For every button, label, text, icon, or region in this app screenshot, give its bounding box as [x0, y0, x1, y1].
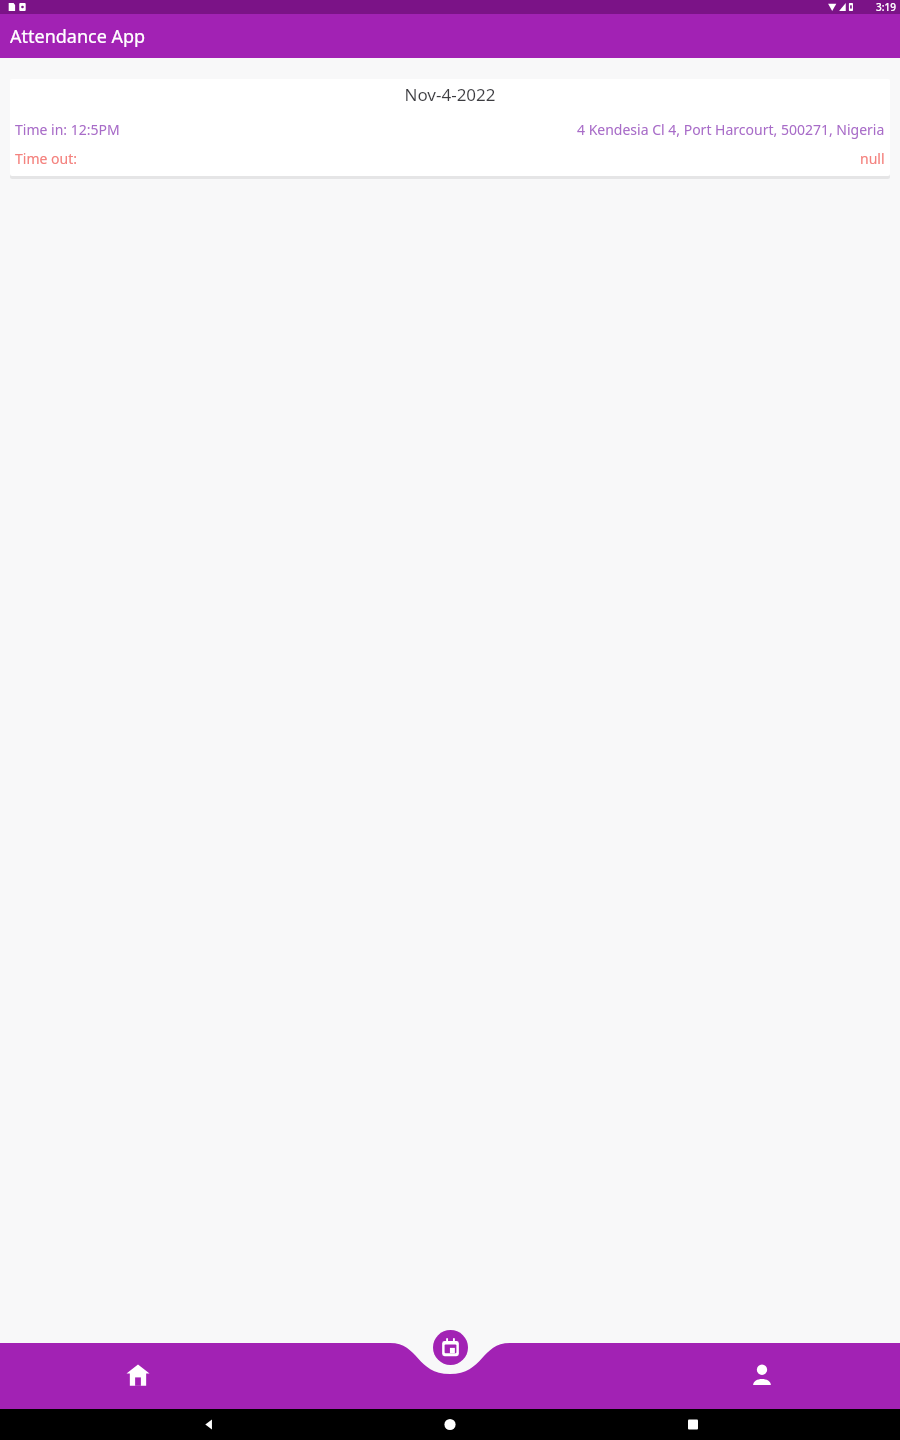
staticText: 4 Kendesia Cl 4, Port Harcourt, 500271, …	[577, 120, 885, 139]
staticText: Nov-4-2022	[15, 83, 885, 106]
staticText: null	[860, 149, 885, 168]
staticText: 3:19	[876, 0, 896, 14]
staticText: Time in: 12:5PM	[15, 120, 120, 139]
staticText: Attendance App	[10, 24, 146, 49]
staticText: Time out:	[15, 149, 77, 168]
button[interactable]: Home	[112, 1349, 164, 1401]
button[interactable]: Calendar	[433, 1330, 468, 1365]
button[interactable]: Nov-4-2022	[10, 79, 890, 176]
button[interactable]: Profile	[736, 1349, 788, 1401]
